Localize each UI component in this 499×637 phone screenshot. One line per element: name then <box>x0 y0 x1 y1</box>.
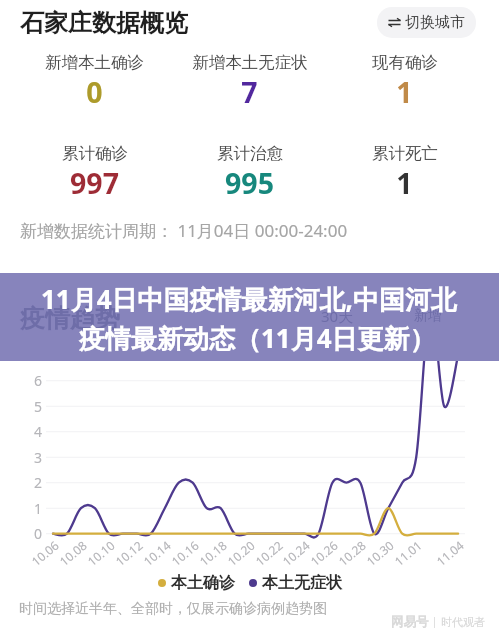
staticText: 10.10 <box>72 537 118 579</box>
staticText: 10.16 <box>156 537 202 579</box>
staticText: 累计治愈 <box>217 143 283 164</box>
staticText: 2 <box>28 473 42 492</box>
staticText: 30天 <box>321 306 354 326</box>
staticText: 10.18 <box>184 537 230 579</box>
staticText: 7 <box>28 346 42 365</box>
staticText: 石家庄数据概览 <box>20 8 188 38</box>
staticText: 11.01 <box>379 537 425 579</box>
staticText: 新增本土确诊 <box>45 52 144 73</box>
staticText: 累计确诊 <box>62 143 128 164</box>
staticText: 11.04 <box>421 537 467 579</box>
staticText: 5 <box>28 397 42 416</box>
staticText: 疫情趋势 <box>20 303 120 334</box>
staticText: 新增 <box>414 307 442 325</box>
staticText: 现有确诊 <box>372 52 438 73</box>
staticText: 10.26 <box>295 537 341 579</box>
staticText: 时间选择近半年、全部时，仅展示确诊病例趋势图 <box>19 600 327 618</box>
staticText: 10.12 <box>100 537 146 579</box>
staticText: 7 <box>241 73 258 112</box>
staticText: 新增数据统计周期： 11月04日 00:00-24:00 <box>20 219 348 242</box>
staticText: 1 <box>28 499 42 518</box>
button[interactable]: 本土无症状 <box>249 573 342 593</box>
staticText: 10.24 <box>267 537 313 579</box>
staticText: 995 <box>225 164 274 203</box>
staticText: 3 <box>28 448 42 467</box>
staticText: 累计死亡 <box>372 143 438 164</box>
staticText: 10.06 <box>16 537 62 579</box>
staticText: 切换城市 <box>405 13 465 32</box>
staticText: 网易号 <box>391 614 429 630</box>
staticText: 10.14 <box>128 537 174 579</box>
staticText: 10.08 <box>44 537 90 579</box>
staticText: 疫情最新动态（11月4日更新） <box>79 320 436 356</box>
staticText: 10.28 <box>323 537 369 579</box>
staticText: 时代观者 <box>441 615 485 629</box>
staticText: 10.22 <box>240 537 286 579</box>
staticText: 1 <box>396 164 413 203</box>
staticText: 新增本土无症状 <box>192 52 308 73</box>
button[interactable]: 本土确诊 <box>158 573 235 593</box>
staticText: 10.20 <box>212 537 258 579</box>
button[interactable]: 切换城市 <box>377 7 476 38</box>
staticText: 本土无症状 <box>262 573 342 593</box>
staticText: 6 <box>28 371 42 390</box>
staticText: 11月4日中国疫情最新河北,中国河北 <box>41 281 458 317</box>
staticText: 0 <box>28 524 42 543</box>
staticText: 0 <box>86 73 103 112</box>
staticText: 997 <box>70 164 119 203</box>
staticText: 4 <box>28 422 42 441</box>
staticText: 本土确诊 <box>171 573 235 593</box>
staticText: 10.30 <box>351 537 397 579</box>
staticText: 1 <box>396 73 413 112</box>
